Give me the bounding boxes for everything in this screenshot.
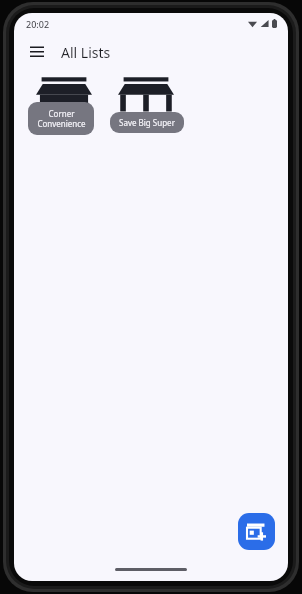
button[interactable]	[28, 75, 94, 135]
staticText: Corner Convenience	[37, 108, 86, 129]
staticText: Save Big Super	[119, 117, 175, 128]
button[interactable]: Save Big Super	[110, 112, 184, 133]
button[interactable]	[110, 75, 184, 133]
button[interactable]: Corner Convenience	[28, 102, 94, 135]
staticText: All Lists	[61, 43, 111, 62]
button[interactable]: Open navigation menu	[24, 39, 50, 65]
button[interactable]: Add store	[238, 513, 275, 550]
staticText: 20:02	[26, 18, 50, 30]
